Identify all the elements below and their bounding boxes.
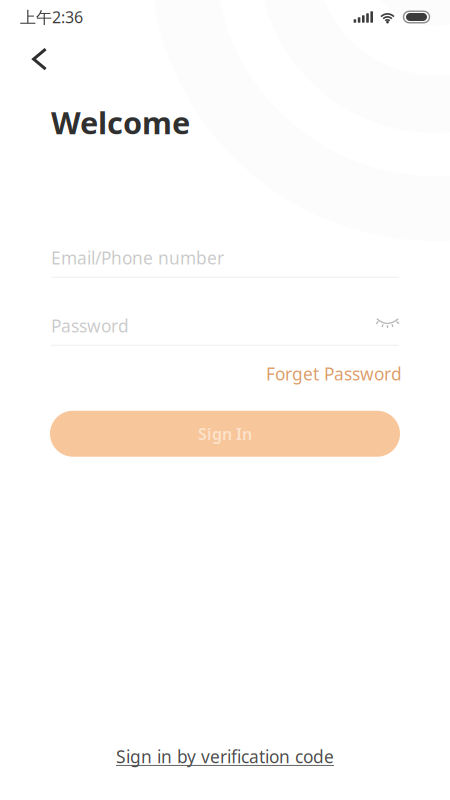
button[interactable]: Back <box>0 34 110 80</box>
staticText: Password <box>51 314 129 337</box>
button[interactable]: Forget Password <box>266 360 402 388</box>
staticText: 上午2:36 <box>20 6 83 28</box>
button[interactable]: Sign In <box>50 411 400 457</box>
staticText: Email/Phone number <box>51 246 224 269</box>
staticText: Sign in by verification code <box>116 745 334 768</box>
button[interactable]: Sign in by verification code <box>116 739 334 774</box>
staticText: Welcome <box>51 102 190 143</box>
staticText: Forget Password <box>266 362 402 385</box>
button[interactable]: Show password <box>366 311 399 341</box>
staticText: Sign In <box>198 423 252 444</box>
